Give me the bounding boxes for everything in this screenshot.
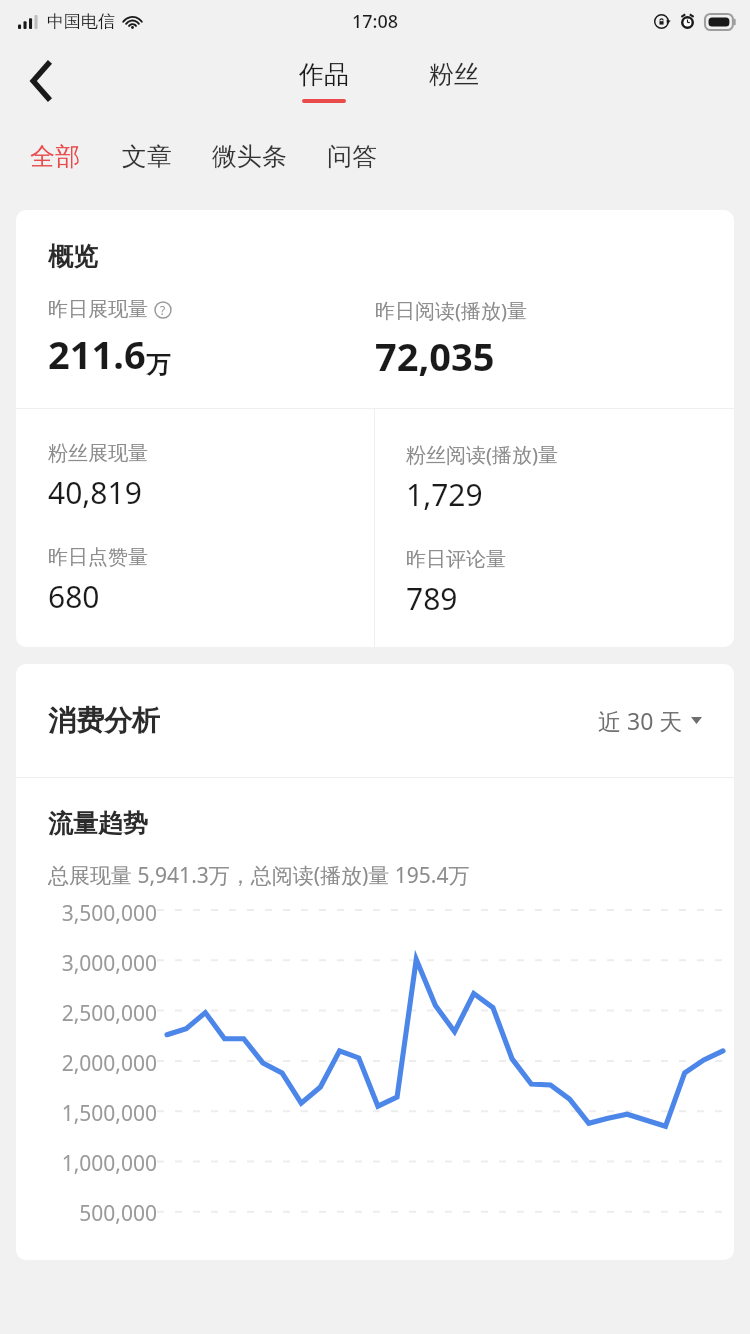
staticText: 总展现量 5,941.3万，总阅读(播放)量 195.4万	[48, 861, 470, 890]
staticText: 680	[48, 576, 100, 617]
staticText: 17:08	[352, 9, 399, 34]
button[interactable]: 文章	[122, 135, 172, 178]
staticText: 文章	[122, 141, 172, 172]
staticText: 3,000,000	[61, 949, 157, 978]
button[interactable]: 问答	[327, 135, 377, 178]
staticText: 中国电信	[47, 11, 115, 32]
staticText: 1,000,000	[61, 1149, 157, 1178]
staticText: 流量趋势	[48, 808, 148, 839]
staticText: 作品	[299, 59, 349, 90]
staticText: 粉丝	[429, 59, 479, 90]
staticText: 昨日展现量	[48, 297, 148, 322]
staticText: 40,819	[48, 472, 142, 513]
staticText: 近 30 天	[598, 705, 683, 736]
staticText: 消费分析	[48, 703, 160, 738]
button[interactable]: 微头条	[212, 135, 287, 178]
staticText: 789	[406, 578, 458, 619]
staticText: 1,729	[406, 474, 483, 515]
button[interactable]: 作品	[287, 59, 361, 103]
button[interactable]: 近 30 天	[598, 705, 702, 736]
button[interactable]: Back	[14, 53, 70, 109]
button[interactable]: 全部	[30, 135, 80, 178]
staticText: 昨日点赞量	[48, 545, 148, 570]
button[interactable]: Help	[154, 301, 172, 319]
staticText: 1,500,000	[61, 1099, 157, 1128]
staticText: 500,000	[79, 1199, 157, 1228]
staticText: 全部	[30, 141, 80, 172]
staticText: 昨日阅读(播放)量	[375, 297, 527, 324]
staticText: 粉丝展现量	[48, 441, 148, 466]
staticText: 2,000,000	[61, 1049, 157, 1078]
staticText: 3,500,000	[61, 899, 157, 928]
staticText: 微头条	[212, 141, 287, 172]
staticText: 72,035	[375, 330, 495, 382]
staticText: 万	[146, 350, 170, 380]
staticText: 昨日评论量	[406, 547, 506, 572]
staticText: 概览	[48, 241, 98, 272]
staticText: 2,500,000	[61, 999, 157, 1028]
staticText: ?	[160, 302, 166, 318]
staticText: 211.6	[48, 328, 146, 380]
button[interactable]: 粉丝	[417, 59, 491, 103]
staticText: 问答	[327, 141, 377, 172]
staticText: 粉丝阅读(播放)量	[406, 441, 558, 468]
